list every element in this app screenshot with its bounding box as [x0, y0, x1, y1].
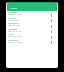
staticText: Mar 12 $88	[8, 24, 21, 27]
button[interactable]: More options	[46, 38, 55, 43]
staticText: Mar 9 $45.60	[8, 35, 22, 38]
staticText: Today $24.00	[8, 13, 23, 16]
staticText: Gym	[8, 32, 14, 35]
button[interactable]: Gift Bob	[6, 10, 58, 16]
button[interactable]: More options	[46, 32, 55, 38]
button[interactable]: More options	[46, 16, 55, 21]
button[interactable]: Transfer	[6, 27, 58, 32]
staticText: Yest $4.50	[8, 19, 19, 21]
staticText: Gift Bob	[8, 10, 18, 13]
button[interactable]: More options	[46, 21, 55, 27]
button[interactable]: More options	[46, 27, 55, 32]
staticText: Coffee	[8, 16, 16, 19]
staticText: Mar 8 $30.00	[8, 41, 22, 43]
button[interactable]: Coffee	[6, 16, 58, 21]
staticText: Groceries	[8, 38, 19, 41]
staticText: Transfer	[8, 27, 18, 30]
staticText: Mar 10 $120	[8, 30, 22, 32]
button[interactable]: Electricity	[6, 21, 58, 27]
button[interactable]: More options	[46, 10, 55, 16]
button[interactable]: Groceries	[6, 38, 58, 43]
staticText: Electricity	[8, 21, 19, 24]
button[interactable]: Gym	[6, 32, 58, 38]
staticText: Wallet	[10, 7, 17, 10]
